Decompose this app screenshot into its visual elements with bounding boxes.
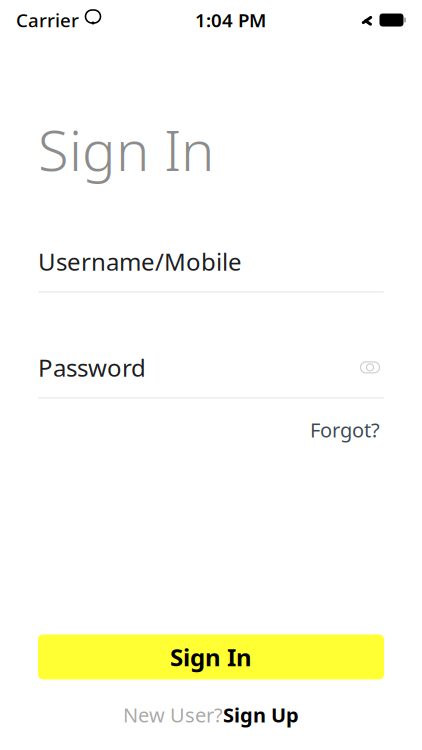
staticText: New User?: [123, 701, 223, 728]
staticText: Username/Mobile: [38, 245, 242, 277]
button[interactable]: Sign In: [38, 634, 384, 679]
button[interactable]: Forgot?: [306, 410, 384, 449]
staticText: Sign In: [38, 112, 214, 186]
button[interactable]: Show password: [356, 356, 384, 378]
staticText: Carrier: [16, 8, 79, 32]
button[interactable]: Sign Up: [223, 701, 299, 728]
staticText: Sign Up: [223, 701, 299, 728]
staticText: Sign In: [170, 641, 252, 673]
staticText: Forgot?: [310, 416, 380, 443]
staticText: 1:04 PM: [195, 8, 266, 32]
staticText: Password: [38, 351, 146, 383]
